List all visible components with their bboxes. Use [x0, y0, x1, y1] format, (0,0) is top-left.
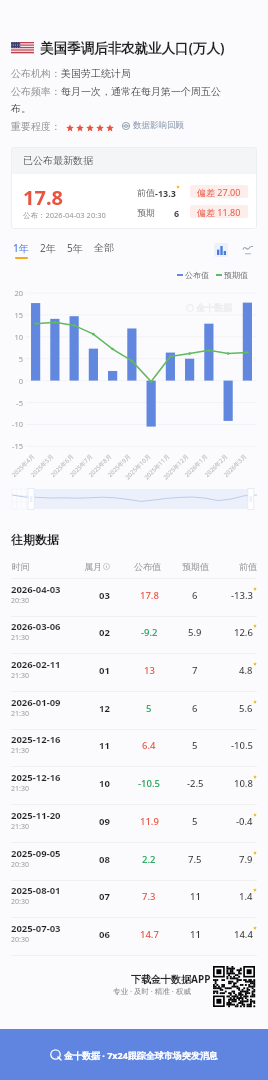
staticText: 08 [99, 853, 110, 866]
staticText: 2.2 [142, 853, 156, 866]
staticText: 预期值 [224, 270, 248, 280]
button[interactable]: 2026-01-09 [0, 692, 268, 730]
staticText: 2026-02-11 [11, 658, 61, 671]
staticText: -10.5 [231, 739, 253, 752]
staticText: 10 [99, 777, 110, 790]
button[interactable]: 2026-02-11 [0, 654, 268, 692]
staticText: 01 [99, 664, 110, 677]
staticText: 02 [99, 626, 110, 639]
staticText: 10.8 [234, 777, 253, 790]
staticText: 数据影响回顾 [133, 120, 184, 131]
staticText: 专业 · 及时 · 精准 · 权威 [113, 986, 191, 996]
staticText: 2025年10月 [123, 453, 152, 482]
staticText: -5 [16, 398, 23, 408]
staticText: 2025年7月 [67, 453, 94, 479]
staticText: 1年 [13, 241, 29, 255]
staticText: 5 [18, 354, 23, 364]
button[interactable]: 5年 [67, 241, 83, 259]
staticText: 公布值 [185, 270, 209, 280]
staticText: 6 [174, 207, 180, 219]
button[interactable]: Bar chart view [214, 243, 228, 257]
staticText: 0 [18, 376, 23, 386]
staticText: 往期数据 [11, 532, 59, 547]
staticText: 2025年4月 [9, 453, 36, 479]
staticText: 公布机构： [11, 67, 61, 80]
staticText: 6.4 [142, 739, 156, 752]
staticText: 公布频率： [11, 85, 61, 98]
staticText: 5.6 [239, 702, 253, 715]
staticText: 美国劳工统计局 [61, 67, 131, 80]
staticText: 2025-12-16 [11, 733, 61, 746]
button[interactable]: 2026-03-06 [0, 616, 268, 654]
staticText: 已公布最新数据 [23, 154, 93, 167]
staticText: 2025年8月 [86, 453, 113, 479]
button[interactable]: 2025-09-05 [0, 843, 268, 881]
staticText: 时间 [12, 561, 30, 572]
staticText: 2025年6月 [48, 453, 75, 479]
staticText: 属月 [84, 561, 102, 572]
button[interactable]: Line chart view [241, 243, 255, 257]
staticText: 20:30 [11, 860, 29, 870]
staticText: 预期 [137, 207, 155, 218]
staticText: 全部 [94, 241, 114, 254]
staticText: 20:30 [11, 897, 29, 907]
staticText: 21:30 [11, 822, 29, 832]
staticText: 12 [99, 702, 110, 715]
button[interactable]: 金十数据 · 7x24跟踪全球市场突发消息 [0, 1029, 268, 1080]
staticText: 预期值 [182, 561, 209, 572]
staticText: 5 [146, 702, 152, 715]
staticText: 1.4 [239, 890, 253, 903]
staticText: -10 [12, 419, 23, 429]
staticText: 10 [14, 332, 23, 342]
staticText: 每月一次，通常在每月第一个周五公 [61, 85, 221, 98]
staticText: 09 [99, 815, 110, 828]
staticText: 11.9 [140, 815, 159, 828]
staticText: 2026-03-06 [11, 620, 61, 633]
staticText: 12.6 [234, 626, 253, 639]
staticText: 2年 [40, 241, 56, 255]
staticText: 11 [190, 928, 201, 941]
staticText: 金十数据 · 7x24跟踪全球市场突发消息 [64, 1049, 218, 1061]
button[interactable]: 数据影响回顾 [122, 120, 184, 131]
staticText: 03 [99, 589, 110, 602]
staticText: 7.5 [188, 853, 202, 866]
staticText: 前值 [239, 561, 257, 572]
staticText: -15 [12, 441, 23, 451]
staticText: 20:30 [11, 935, 29, 945]
staticText: 2026-01-09 [11, 696, 61, 709]
staticText: 重要程度： [11, 120, 61, 133]
button[interactable]: 2025-12-16 [0, 729, 268, 767]
button[interactable]: 2025-12-16 [0, 767, 268, 805]
staticText: 6 [192, 589, 198, 602]
staticText: 21:30 [11, 633, 29, 643]
button[interactable]: 1年 [13, 241, 29, 259]
staticText: 4.8 [239, 664, 253, 677]
staticText: 5年 [67, 241, 83, 255]
staticText: 2025-09-05 [11, 847, 61, 860]
button[interactable]: 2025-11-20 [0, 805, 268, 843]
button[interactable]: 全部 [94, 241, 114, 258]
button[interactable]: 2025-07-03 [0, 918, 268, 956]
button[interactable]: 2025-08-01 [0, 880, 268, 918]
staticText: 21:30 [11, 671, 29, 681]
staticText: 7 [192, 664, 198, 677]
staticText: 21:30 [11, 746, 29, 756]
staticText: 17.8 [23, 184, 63, 211]
staticText: 06 [99, 928, 110, 941]
staticText: 偏差 27.00 [197, 186, 241, 198]
button[interactable]: 2年 [40, 241, 56, 259]
staticText: 15 [14, 310, 23, 320]
staticText: 20:30 [11, 596, 29, 606]
staticText: 2026-04-03 [11, 583, 61, 596]
staticText: 2025年12月 [161, 453, 190, 482]
staticText: -13.3 [231, 589, 253, 602]
staticText: 11 [190, 890, 201, 903]
staticText: 布。 [11, 102, 31, 115]
button[interactable]: 2026-04-03 [0, 579, 268, 617]
staticText: 美国季调后非农就业人口(万人) [40, 39, 225, 57]
staticText: 5.9 [188, 626, 202, 639]
staticText: 14.4 [234, 928, 253, 941]
button[interactable]: Chart range selector [12, 489, 257, 509]
staticText: 前值 [137, 187, 155, 198]
staticText: 07 [99, 890, 110, 903]
